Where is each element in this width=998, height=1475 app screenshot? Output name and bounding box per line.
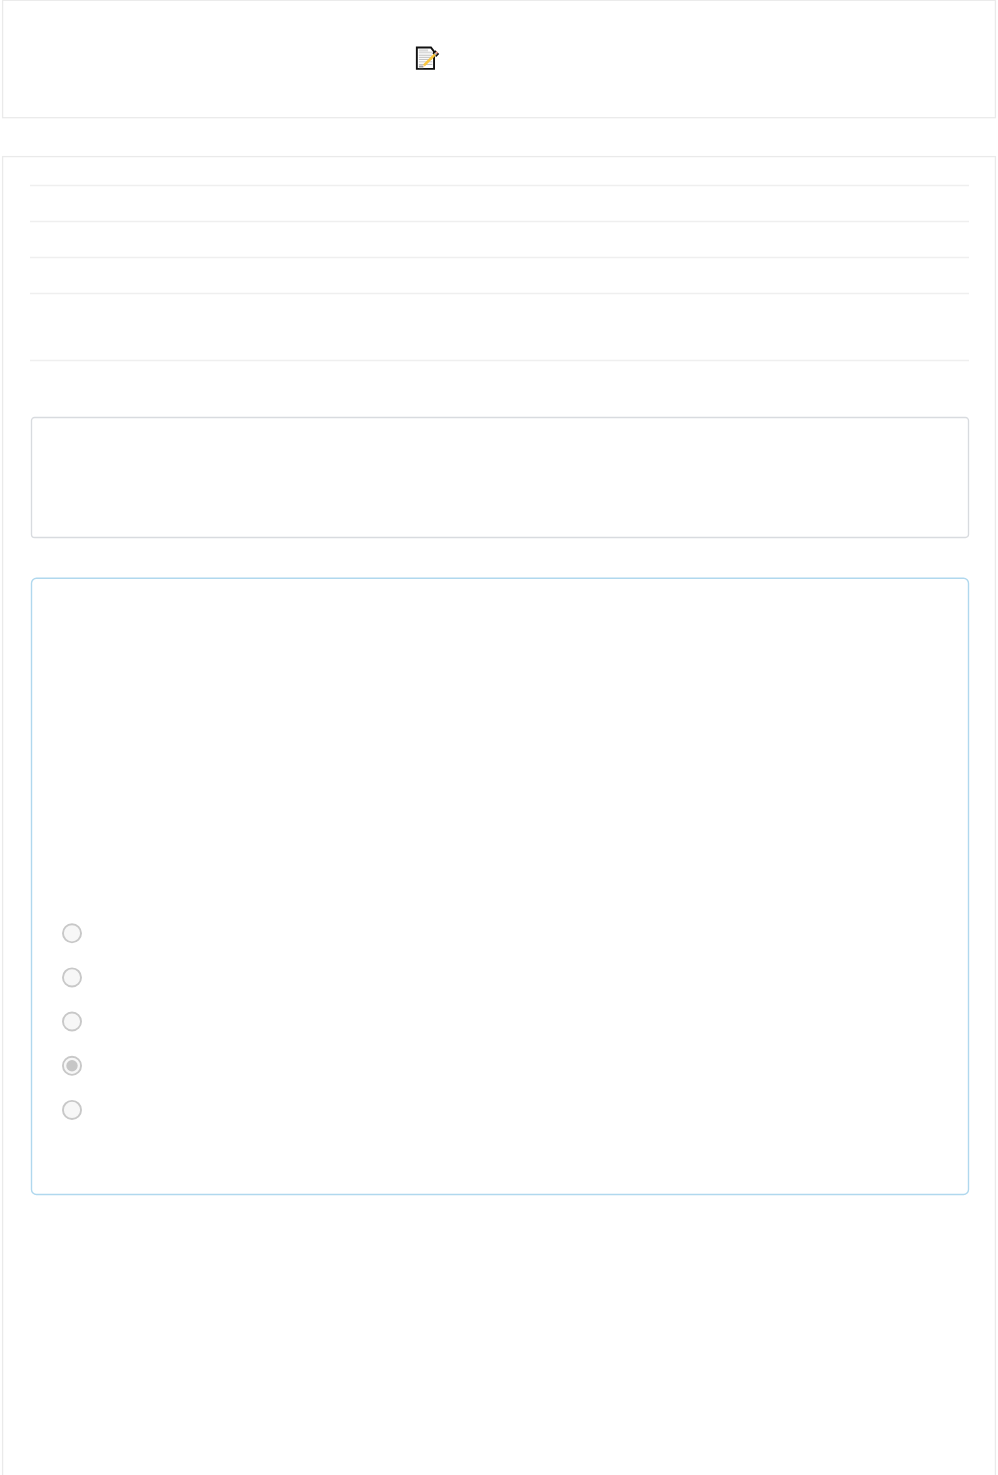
button[interactable]: Option 4 — [52, 1047, 948, 1083]
button[interactable]: Edit form title — [412, 42, 444, 74]
button[interactable]: Answer field — [31, 417, 968, 538]
